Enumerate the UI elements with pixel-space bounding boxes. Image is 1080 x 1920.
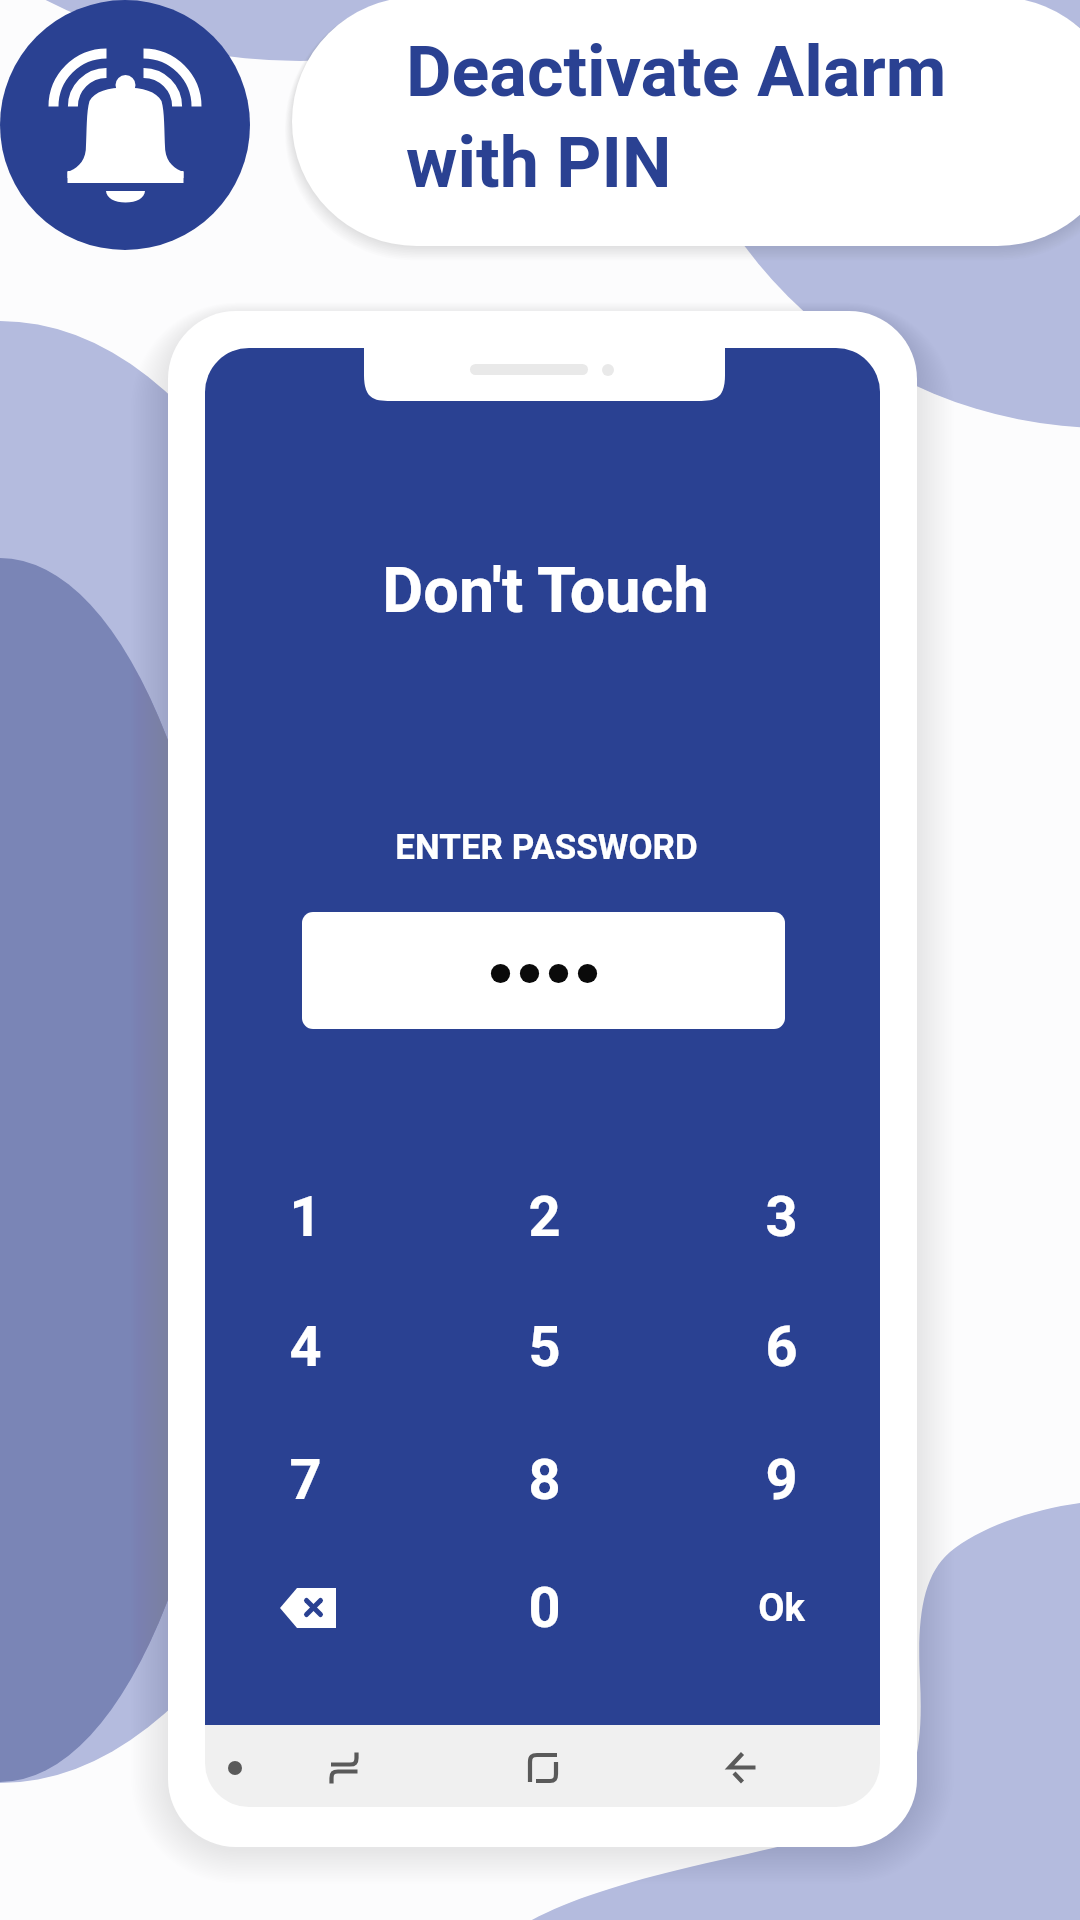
staticText: Ok — [758, 1586, 805, 1631]
staticText: ENTER PASSWORD — [395, 827, 698, 868]
button[interactable]: 9 — [721, 1435, 841, 1525]
staticText: 8 — [528, 1447, 561, 1513]
staticText: Don't Touch — [382, 554, 709, 628]
button[interactable]: 1 — [245, 1172, 365, 1262]
button[interactable]: 7 — [245, 1435, 365, 1525]
staticText: Deactivate Alarm with PIN — [406, 31, 947, 204]
button[interactable]: 3 — [721, 1172, 841, 1262]
staticText: 3 — [765, 1184, 798, 1250]
button[interactable]: Ok — [721, 1563, 841, 1653]
staticText: 1 — [289, 1184, 322, 1250]
button[interactable]: 0 — [484, 1563, 604, 1653]
staticText: 9 — [765, 1447, 798, 1513]
staticText: 7 — [289, 1447, 322, 1513]
button[interactable]: 4 — [245, 1302, 365, 1392]
staticText: 2 — [528, 1184, 561, 1250]
staticText: 6 — [765, 1314, 798, 1380]
button[interactable]: Deactivate Alarm with PIN — [292, 0, 1080, 246]
button[interactable]: 5 — [484, 1302, 604, 1392]
button[interactable]: 6 — [721, 1302, 841, 1392]
staticText: 4 — [289, 1314, 322, 1380]
button[interactable] — [302, 912, 785, 1029]
staticText: 0 — [528, 1575, 561, 1641]
button[interactable]: 8 — [484, 1435, 604, 1525]
button[interactable]: Alarm — [0, 0, 250, 250]
button[interactable]: Backspace — [246, 1563, 370, 1653]
staticText: 5 — [528, 1314, 561, 1380]
button[interactable]: 2 — [484, 1172, 604, 1262]
